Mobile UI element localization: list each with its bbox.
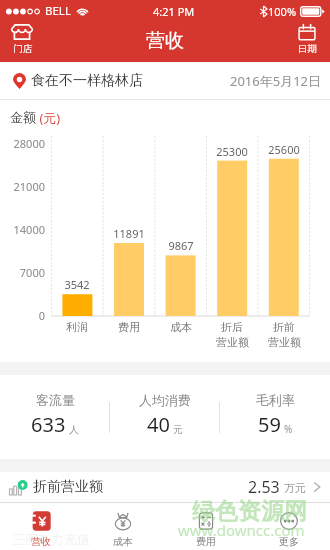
staticText: 成本 — [113, 535, 133, 548]
staticText: 营收 — [146, 29, 184, 53]
staticText: 折前营业额 — [33, 478, 103, 496]
staticText: 营收 — [31, 535, 51, 548]
staticText: 633 — [31, 411, 66, 438]
staticText: BELL — [45, 3, 71, 19]
staticText: 毛利率 — [256, 392, 295, 408]
staticText: 元 — [173, 423, 183, 436]
staticText: (元) — [36, 109, 61, 127]
staticText: www.downcc.com — [178, 520, 305, 540]
staticText: 金额 — [10, 109, 36, 125]
staticText: 11891 — [103, 226, 155, 241]
staticText: 三图动力充值 — [12, 531, 90, 547]
staticText: 2016年5月12日 — [230, 72, 322, 90]
staticText: 营业额 — [216, 335, 249, 349]
staticText: 人均消费 — [139, 392, 191, 408]
staticText: 14000 — [0, 222, 45, 237]
staticText: 门店 — [13, 43, 32, 55]
staticText: 费用 — [196, 535, 216, 548]
staticText: 7000 — [0, 265, 45, 280]
button[interactable]: 更多 — [247, 502, 330, 550]
staticText: 4:21 PM — [153, 4, 195, 19]
staticText: 人 — [69, 423, 79, 436]
staticText: 利润 — [66, 320, 88, 334]
staticText: 日期 — [298, 43, 317, 55]
staticText: 食在不一样格林店 — [31, 72, 143, 90]
staticText: 折后 — [221, 320, 243, 334]
staticText: 3542 — [51, 277, 103, 292]
button[interactable]: 折前营业额 — [0, 472, 330, 502]
staticText: 更多 — [279, 535, 299, 548]
staticText: 9867 — [155, 238, 207, 253]
button[interactable]: 门店 — [0, 22, 44, 62]
staticText: 绿色资源网 — [192, 497, 307, 526]
staticText: 万元 — [284, 481, 306, 495]
staticText: 折前 — [273, 320, 295, 334]
staticText: 28000 — [0, 136, 45, 151]
button[interactable]: 客流量 — [0, 375, 110, 459]
staticText: 2.53 — [248, 476, 280, 498]
button[interactable]: 人均消费 — [110, 375, 220, 459]
staticText: 费用 — [118, 320, 140, 334]
staticText: 25300 — [206, 144, 258, 159]
staticText: 59 — [258, 411, 281, 438]
button[interactable]: 营收 — [0, 502, 82, 550]
staticText: % — [284, 422, 293, 436]
button[interactable]: 费用 — [164, 502, 247, 550]
staticText: 0 — [0, 308, 45, 323]
staticText: 40 — [147, 411, 170, 438]
staticText: 25600 — [258, 142, 310, 157]
staticText: 营业额 — [268, 335, 301, 349]
staticText: 客流量 — [36, 392, 75, 408]
button[interactable]: 日期 — [284, 22, 330, 62]
staticText: 成本 — [170, 320, 192, 334]
staticText: 100% — [268, 4, 297, 19]
staticText: 21000 — [0, 179, 45, 194]
button[interactable]: 成本 — [82, 502, 164, 550]
button[interactable]: 毛利率 — [220, 375, 330, 459]
button[interactable]: 食在不一样格林店 — [0, 62, 330, 100]
